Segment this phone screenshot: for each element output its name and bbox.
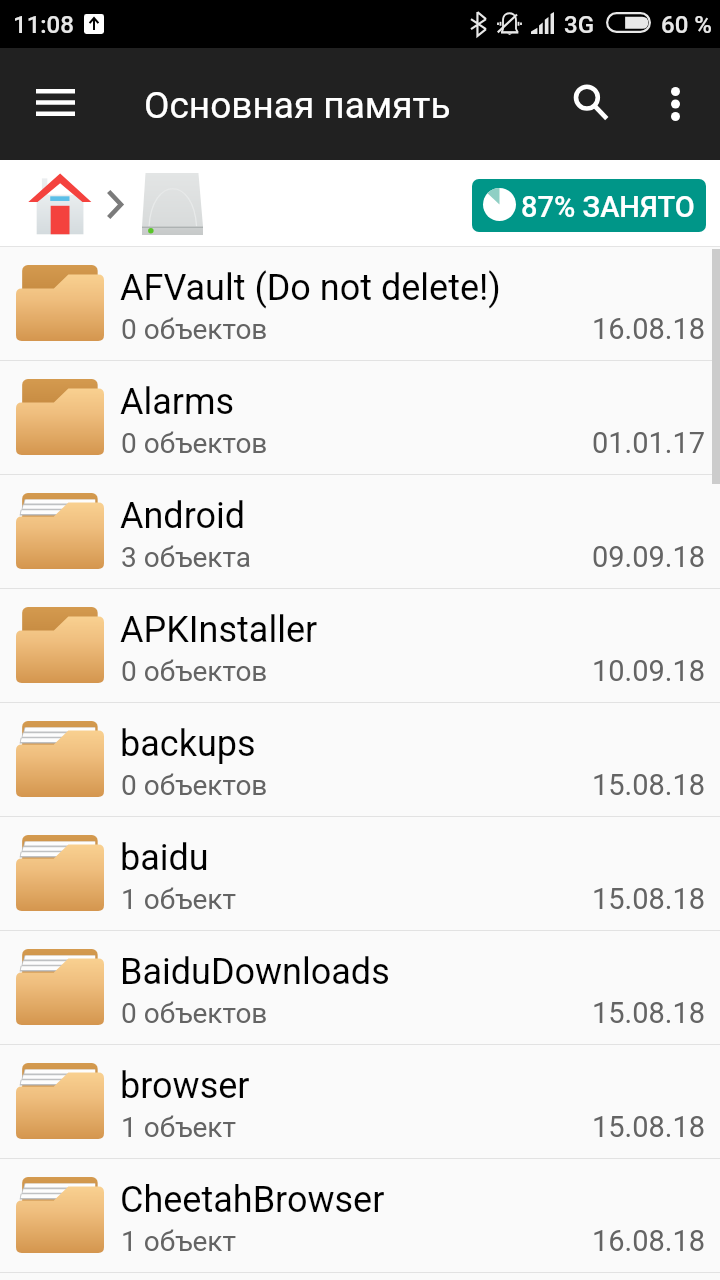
staticText: 1 объект	[121, 883, 236, 916]
staticText: 11:08	[13, 11, 74, 39]
staticText: 16.08.18	[592, 1224, 706, 1258]
staticText: 16.08.18	[592, 312, 706, 346]
button[interactable]: More options	[640, 64, 712, 136]
staticText: 09.09.18	[592, 540, 706, 574]
button[interactable]: Search	[551, 64, 623, 136]
staticText: 60 %	[661, 11, 712, 39]
staticText: 0 объектов	[121, 655, 268, 688]
button[interactable]: Home	[26, 172, 92, 236]
button[interactable]: APKInstaller	[0, 589, 720, 702]
staticText: 1 объект	[121, 1111, 236, 1144]
staticText: 87% ЗАНЯТО	[521, 190, 695, 224]
staticText: browser	[120, 1065, 250, 1107]
button[interactable]: Android	[0, 475, 720, 588]
staticText: 15.08.18	[592, 882, 706, 916]
staticText: baidu	[120, 837, 209, 879]
staticText: 3G	[564, 11, 594, 39]
button[interactable]: Alarms	[0, 361, 720, 474]
staticText: BaiduDownloads	[120, 951, 390, 993]
staticText: 0 объектов	[121, 313, 268, 346]
button[interactable]: BaiduDownloads	[0, 931, 720, 1044]
button[interactable]: CheetahBrowser	[0, 1159, 720, 1272]
staticText: backups	[120, 723, 256, 765]
staticText: 0 объектов	[121, 997, 268, 1030]
staticText: 10.09.18	[592, 654, 706, 688]
staticText: 01.01.17	[592, 426, 706, 460]
button[interactable]: Navigation menu	[20, 66, 92, 138]
staticText: 0 объектов	[121, 769, 268, 802]
button[interactable]: AFVault (Do not delete!)	[0, 247, 720, 360]
staticText: 15.08.18	[592, 768, 706, 802]
staticText: 0 объектов	[121, 427, 268, 460]
staticText: Alarms	[120, 381, 235, 423]
staticText: 15.08.18	[592, 1110, 706, 1144]
staticText: 3 объекта	[121, 541, 251, 574]
staticText: 15.08.18	[592, 996, 706, 1030]
button[interactable]: 87% ЗАНЯТО	[472, 179, 706, 232]
button[interactable]: baidu	[0, 817, 720, 930]
staticText: CheetahBrowser	[120, 1179, 385, 1221]
staticText: Основная память	[144, 84, 451, 127]
button[interactable]: backups	[0, 703, 720, 816]
staticText: AFVault (Do not delete!)	[120, 267, 501, 309]
button[interactable]: browser	[0, 1045, 720, 1158]
staticText: Android	[120, 495, 246, 537]
staticText: APKInstaller	[120, 609, 318, 651]
staticText: 1 объект	[121, 1225, 236, 1258]
button[interactable]: Internal storage	[142, 173, 203, 235]
